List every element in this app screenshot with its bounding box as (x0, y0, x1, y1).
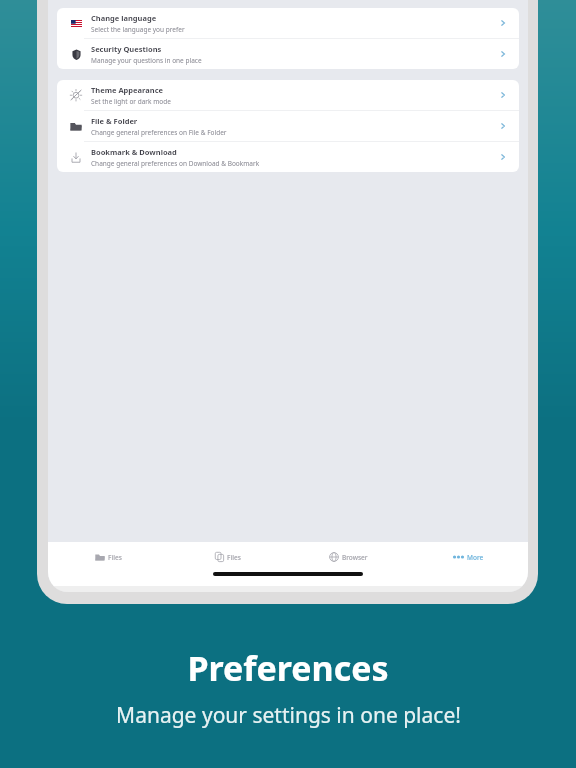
button[interactable]: Security Questions (57, 39, 519, 69)
staticText: Files (108, 553, 122, 562)
staticText: Set the light or dark mode (91, 97, 171, 106)
staticText: Change language (91, 13, 157, 23)
staticText: Manage your questions in one place (91, 56, 202, 65)
staticText: Theme Appearance (91, 85, 163, 95)
button[interactable]: Files (48, 542, 168, 572)
staticText: Select the language you prefer (91, 25, 185, 34)
staticText: Bookmark & Download (91, 147, 177, 157)
button[interactable]: Browser (288, 542, 408, 572)
button[interactable]: Change language (57, 8, 519, 38)
staticText: File & Folder (91, 116, 138, 126)
button[interactable]: Files (168, 542, 288, 572)
staticText: Security Questions (91, 44, 162, 54)
staticText: Preferences (187, 645, 389, 691)
button[interactable]: File & Folder (57, 111, 519, 141)
staticText: Files (227, 553, 241, 562)
staticText: More (467, 553, 484, 562)
staticText: Change general preferences on File & Fol… (91, 128, 227, 137)
staticText: Change general preferences on Download &… (91, 159, 260, 168)
button[interactable]: More (408, 542, 528, 572)
button[interactable]: Bookmark & Download (57, 142, 519, 172)
staticText: Manage your settings in one place! (116, 701, 461, 730)
staticText: Browser (342, 553, 368, 562)
button[interactable]: Theme Appearance (57, 80, 519, 110)
